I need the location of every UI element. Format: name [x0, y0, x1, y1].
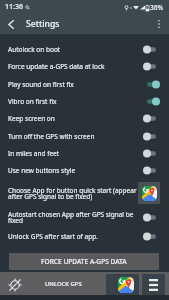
- staticText: Keep screen on: [8, 114, 142, 123]
- button[interactable]: Choose App for button quick start (appea…: [0, 180, 169, 206]
- button[interactable]: Keep screen on: [0, 110, 169, 127]
- button[interactable]: Back: [0, 14, 22, 34]
- staticText: Play sound on first fix: [8, 80, 142, 89]
- button[interactable]: GPS off: [4, 272, 25, 295]
- button[interactable]: Unlock GPS after start of app.: [0, 229, 169, 243]
- button[interactable]: FORCE UPDATE A-GPS DATA: [9, 253, 159, 270]
- button[interactable]: In miles and feet: [0, 145, 169, 162]
- staticText: UNLOCK GPS: [45, 280, 82, 288]
- staticText: Force update a-GPS data at lock: [8, 62, 142, 71]
- button[interactable]: Show list: [142, 274, 165, 295]
- staticText: Unlock GPS after start of app.: [8, 232, 142, 241]
- staticText: Choose App for button quick start (appea…: [8, 186, 138, 201]
- staticText: Autolock on boot: [8, 45, 142, 54]
- staticText: In miles and feet: [8, 149, 142, 158]
- button[interactable]: Use new buttons style: [0, 162, 169, 179]
- button[interactable]: Autostart chosen App after GPS signal be…: [0, 205, 169, 230]
- button[interactable]: Force update a-GPS data at lock: [0, 58, 169, 75]
- staticText: Use new buttons style: [8, 166, 142, 175]
- staticText: 36%: [150, 3, 164, 12]
- button[interactable]: Turn off the GPS with screen: [0, 128, 169, 145]
- staticText: Autostart chosen App after GPS signal be…: [8, 210, 142, 225]
- button[interactable]: Play sound on first fix: [0, 76, 169, 93]
- button[interactable]: Autolock on boot: [0, 41, 169, 58]
- button[interactable]: UNLOCK GPS: [25, 272, 102, 295]
- button[interactable]: Vibro on first fix: [0, 93, 169, 110]
- button[interactable]: Choose application: [138, 182, 160, 204]
- staticText: FORCE UPDATE A-GPS DATA: [41, 257, 127, 266]
- staticText: 11:36: [5, 2, 23, 12]
- staticText: Vibro on first fix: [8, 97, 142, 106]
- staticText: Settings: [26, 18, 60, 30]
- button[interactable]: More options: [148, 14, 169, 34]
- button[interactable]: Open Maps: [106, 274, 139, 295]
- staticText: Turn off the GPS with screen: [8, 132, 142, 141]
